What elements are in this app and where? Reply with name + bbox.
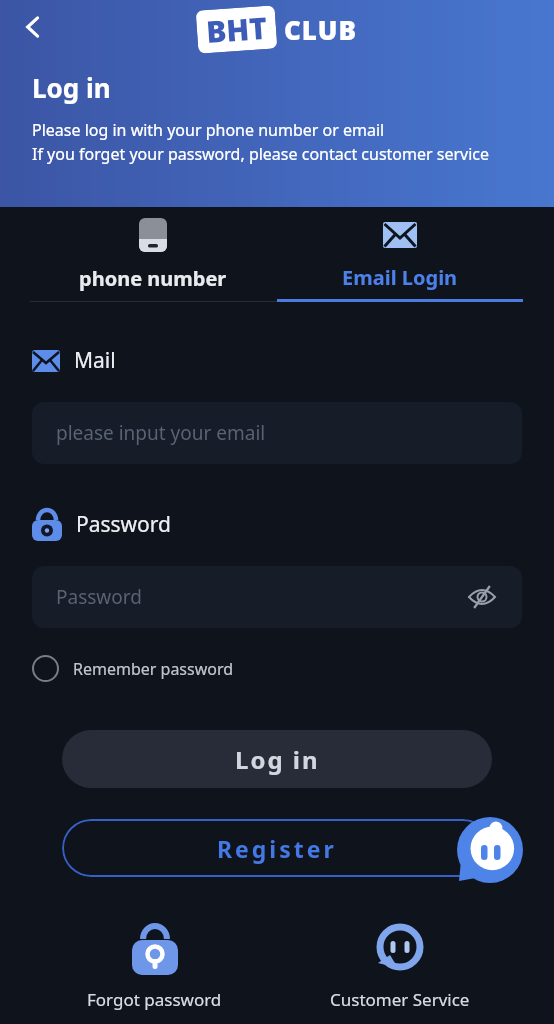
button[interactable]: Password bbox=[32, 566, 522, 628]
staticText: BHT bbox=[205, 7, 268, 52]
button[interactable]: Forgot password bbox=[32, 923, 277, 1011]
button[interactable]: Log in bbox=[62, 730, 492, 788]
staticText: Mail bbox=[74, 346, 116, 375]
staticText: Forgot password bbox=[87, 988, 222, 1011]
button[interactable]: Remember password bbox=[32, 655, 234, 682]
staticText: CLUB bbox=[284, 12, 357, 47]
button[interactable]: Register bbox=[62, 819, 492, 877]
staticText: If you forget your password, please cont… bbox=[32, 143, 490, 165]
staticText: Please log in with your phone number or … bbox=[32, 119, 385, 141]
button[interactable]: Customer Service bbox=[277, 923, 522, 1011]
staticText: Log in bbox=[32, 70, 111, 105]
staticText: Email Login bbox=[342, 264, 458, 291]
button[interactable] bbox=[457, 817, 523, 883]
button[interactable]: phone number bbox=[30, 218, 276, 292]
staticText: Password bbox=[56, 584, 142, 610]
staticText: Register bbox=[217, 833, 337, 864]
staticText: Log in bbox=[235, 743, 320, 776]
staticText: please input your email bbox=[56, 420, 266, 446]
button[interactable] bbox=[14, 8, 52, 46]
staticText: phone number bbox=[79, 265, 227, 292]
staticText: Remember password bbox=[73, 658, 234, 680]
staticText: Customer Service bbox=[330, 988, 470, 1011]
staticText: Password bbox=[76, 510, 171, 539]
button[interactable]: please input your email bbox=[32, 402, 522, 464]
button[interactable]: Email Login bbox=[276, 218, 523, 291]
